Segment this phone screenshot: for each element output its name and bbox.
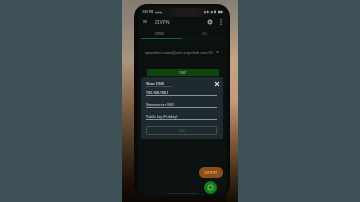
staticText: START: [179, 71, 187, 75]
button[interactable]: speedtest.zivpn@port.zivpnlink.com:53: [145, 49, 219, 55]
staticText: Nameserver (NS): [146, 102, 174, 107]
staticText: SERVER: [155, 32, 165, 36]
button[interactable]: Menu: [142, 19, 147, 24]
button[interactable]: More options: [216, 17, 225, 26]
staticText: ZIVPN: [155, 19, 170, 26]
button[interactable]: SAVE: [146, 126, 217, 135]
staticText: Domain Name System (DNS): [146, 85, 173, 88]
staticText: SAVE: [179, 129, 185, 133]
staticText: Slow DNS: [146, 81, 164, 86]
button[interactable]: SUPPORT: [199, 167, 223, 178]
button[interactable]: LOG: [182, 30, 227, 38]
button[interactable]: Close: [213, 80, 220, 87]
button[interactable]: START: [147, 69, 219, 76]
staticText: Public key (Pubkey): [146, 114, 178, 119]
staticText: SUPPORT: [204, 171, 218, 175]
button[interactable]: WhatsApp: [204, 181, 217, 194]
button[interactable]: Settings: [205, 17, 214, 26]
button[interactable]: SERVER: [138, 30, 182, 38]
staticText: 3:00 PM: [142, 10, 154, 14]
staticText: LOG: [202, 32, 208, 36]
staticText: 192.168.100.1: [146, 90, 169, 95]
staticText: speedtest.zivpn@port.zivpnlink.com:53: [145, 50, 213, 55]
